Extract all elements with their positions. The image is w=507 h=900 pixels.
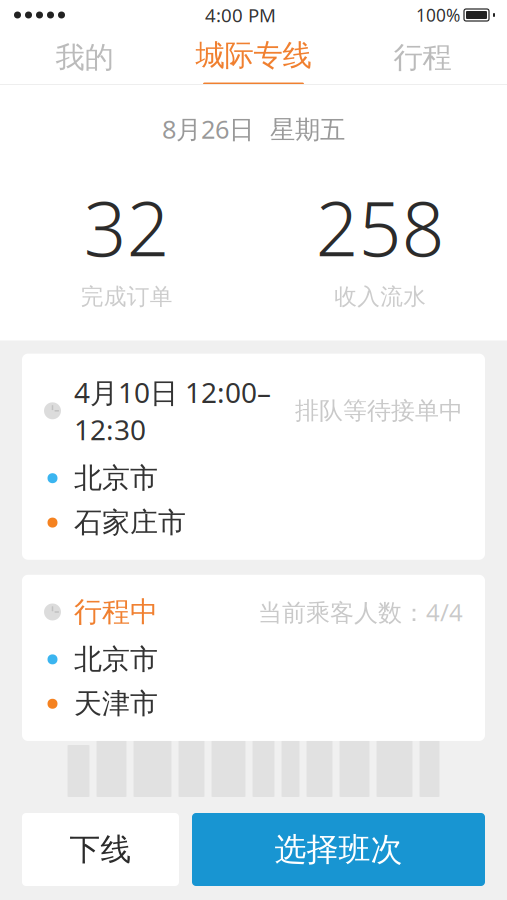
button[interactable]: 下线: [22, 813, 179, 886]
staticText: 北京市: [74, 642, 158, 677]
button[interactable]: 我的: [0, 30, 169, 85]
staticText: 258: [316, 178, 445, 277]
staticText: 完成订单: [81, 283, 173, 311]
staticText: 石家庄市: [74, 505, 186, 540]
staticText: 当前乘客人数：4/4: [258, 596, 463, 628]
staticText: 排队等待接单中: [295, 396, 463, 426]
staticText: 4:00 PM: [205, 3, 276, 27]
staticText: 行程: [393, 39, 451, 75]
button[interactable]: 行程中: [22, 575, 485, 741]
staticText: 100%: [416, 3, 460, 26]
button[interactable]: 4月10日 12:00–12:30: [22, 354, 485, 560]
staticText: 4月10日 12:00–12:30: [74, 374, 271, 448]
staticText: 天津市: [74, 687, 158, 721]
staticText: 我的: [55, 39, 113, 75]
button[interactable]: 行程: [338, 30, 507, 85]
staticText: 收入流水: [334, 283, 426, 311]
staticText: 选择班次: [274, 830, 402, 869]
staticText: 行程中: [74, 595, 158, 629]
button[interactable]: 选择班次: [192, 813, 485, 886]
staticText: 8月26日 星期五: [162, 112, 345, 146]
staticText: 32: [84, 178, 170, 277]
button[interactable]: 城际专线: [169, 30, 338, 85]
staticText: 下线: [69, 831, 131, 868]
staticText: 城际专线: [195, 37, 311, 73]
staticText: 北京市: [74, 461, 158, 495]
